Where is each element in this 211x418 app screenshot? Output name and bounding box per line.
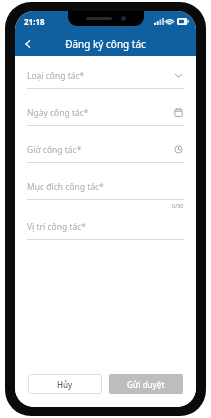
button[interactable]: Hủy [28,374,102,394]
staticText: Gửi duyệt [127,379,165,390]
button[interactable]: Mục đích công tác* [27,174,184,214]
staticText: Giờ công tác* [27,144,173,156]
button[interactable]: Gửi duyệt [109,374,183,394]
button[interactable]: Loại công tác* [27,63,184,100]
staticText: Mục đích công tác* [27,181,173,193]
staticText: 0/50 [172,202,184,209]
button[interactable]: Giờ công tác* [27,137,184,174]
staticText: Ngày công tác* [27,107,173,119]
button[interactable]: Vị trí công tác* [27,214,184,251]
staticText: Hủy [57,379,73,390]
staticText: Vị trí công tác* [27,221,173,233]
staticText: 21:18 [24,16,45,27]
staticText: Loại công tác* [27,70,173,82]
staticText: Đăng ký công tác [65,37,146,51]
button[interactable]: Back [15,31,40,56]
button[interactable]: Ngày công tác* [27,100,184,137]
